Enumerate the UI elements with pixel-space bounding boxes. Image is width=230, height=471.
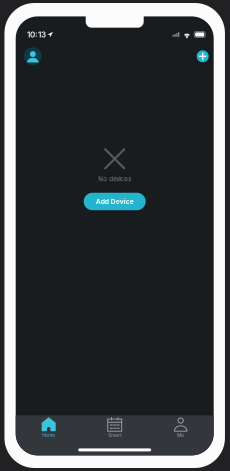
button[interactable]: Home: [16, 415, 82, 441]
staticText: No devices: [98, 175, 131, 183]
button[interactable]: Add Device: [84, 193, 146, 210]
button[interactable]: Me: [148, 415, 214, 441]
staticText: Me: [177, 433, 184, 438]
button[interactable]: Profile: [22, 45, 44, 67]
staticText: Add Device: [96, 197, 134, 205]
button[interactable]: Add device: [192, 45, 214, 67]
staticText: Smart: [108, 433, 121, 438]
staticText: 10:13: [27, 30, 46, 39]
button[interactable]: Smart: [82, 415, 148, 441]
staticText: Home: [42, 433, 55, 438]
